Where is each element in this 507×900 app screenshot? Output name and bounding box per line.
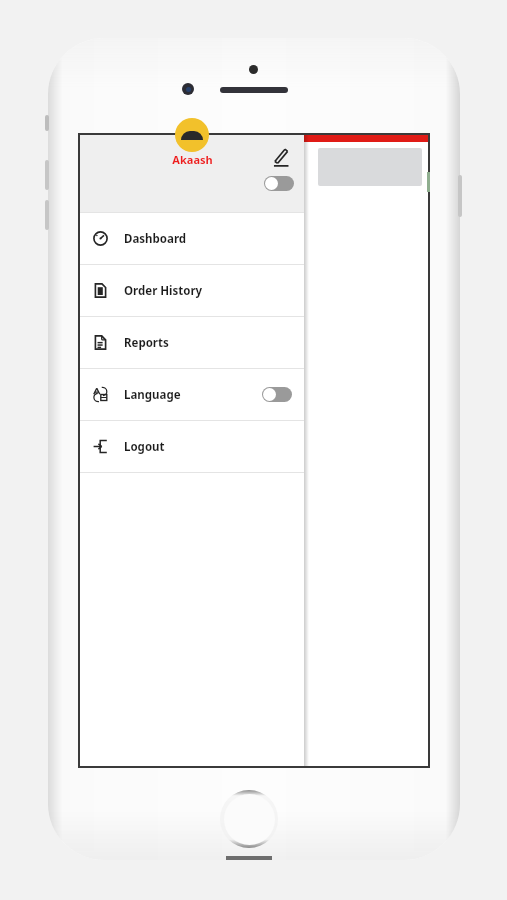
staticText: Logout bbox=[124, 439, 165, 455]
button[interactable]: Dashboard bbox=[80, 213, 304, 264]
button[interactable]: Toggle bbox=[264, 176, 294, 191]
staticText: Language bbox=[124, 387, 181, 403]
button[interactable]: Akaash bbox=[80, 135, 304, 212]
button[interactable]: Edit profile bbox=[270, 147, 292, 169]
staticText: Reports bbox=[124, 335, 169, 351]
button[interactable]: Language toggle bbox=[262, 387, 292, 402]
staticText: Akaash bbox=[172, 152, 213, 167]
button[interactable]: Language bbox=[80, 369, 304, 420]
button[interactable]: Reports bbox=[80, 317, 304, 368]
staticText: Order History bbox=[124, 283, 203, 299]
button[interactable]: Logout bbox=[80, 421, 304, 472]
button[interactable]: Order History bbox=[80, 265, 304, 316]
staticText: Dashboard bbox=[124, 231, 187, 247]
